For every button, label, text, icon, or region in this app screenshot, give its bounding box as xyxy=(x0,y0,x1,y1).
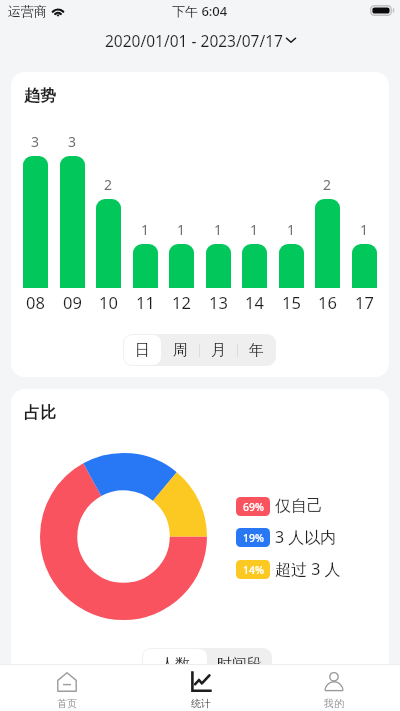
staticText: 1 xyxy=(214,220,223,239)
button[interactable]: 年 xyxy=(237,335,275,365)
staticText: 1 xyxy=(177,220,186,239)
staticText: 下午 6:04 xyxy=(172,2,228,20)
staticText: 超过 3 人 xyxy=(275,558,341,580)
staticText: 09 xyxy=(63,291,82,313)
staticText: 2020/01/01 - 2023/07/17 xyxy=(105,30,283,51)
button[interactable]: 时间段 xyxy=(207,649,271,679)
staticText: 统计 xyxy=(191,697,211,710)
staticText: 运营商 xyxy=(8,3,47,19)
other: Statistics xyxy=(191,672,211,692)
staticText: 月 xyxy=(211,341,226,360)
staticText: 1 xyxy=(250,220,259,239)
staticText: 19% xyxy=(243,531,264,545)
staticText: 10 xyxy=(99,291,118,313)
staticText: 11 xyxy=(136,291,155,313)
staticText: 16 xyxy=(318,291,337,313)
staticText: 69% xyxy=(243,500,264,514)
other: Profile xyxy=(324,672,344,692)
staticText: 12 xyxy=(172,291,191,313)
button[interactable]: 2020/01/01 - 2023/07/17 xyxy=(0,27,400,53)
button[interactable]: 月 xyxy=(199,335,237,365)
staticText: 我的 xyxy=(324,697,344,710)
button[interactable]: 人数 xyxy=(143,649,207,679)
staticText: 1 xyxy=(287,220,296,239)
staticText: 周 xyxy=(173,341,188,360)
staticText: 14 xyxy=(245,291,264,313)
button[interactable]: Statistics xyxy=(134,672,267,711)
staticText: 占比 xyxy=(24,403,56,423)
staticText: 3 xyxy=(68,132,77,151)
staticText: 17 xyxy=(355,291,374,313)
staticText: 人数 xyxy=(160,655,190,674)
staticText: 2 xyxy=(323,175,332,194)
button[interactable]: Profile xyxy=(267,672,400,711)
staticText: 13 xyxy=(209,291,228,313)
staticText: 3 人以内 xyxy=(275,526,337,548)
staticText: 08 xyxy=(26,291,45,313)
button[interactable]: 日 xyxy=(124,335,161,365)
staticText: 日 xyxy=(135,341,150,360)
staticText: 14% xyxy=(243,563,264,577)
other: Home xyxy=(57,672,77,692)
staticText: 15 xyxy=(282,291,301,313)
staticText: 时间段 xyxy=(217,655,262,674)
button[interactable]: 周 xyxy=(161,335,199,365)
staticText: 1 xyxy=(141,220,150,239)
staticText: 2 xyxy=(104,175,113,194)
staticText: 首页 xyxy=(57,697,77,710)
staticText: 3 xyxy=(31,132,40,151)
staticText: 1 xyxy=(360,220,369,239)
staticText: 仅自己 xyxy=(275,496,323,516)
button[interactable]: Home xyxy=(0,672,134,711)
staticText: 年 xyxy=(249,341,264,360)
staticText: 趋势 xyxy=(24,86,56,106)
